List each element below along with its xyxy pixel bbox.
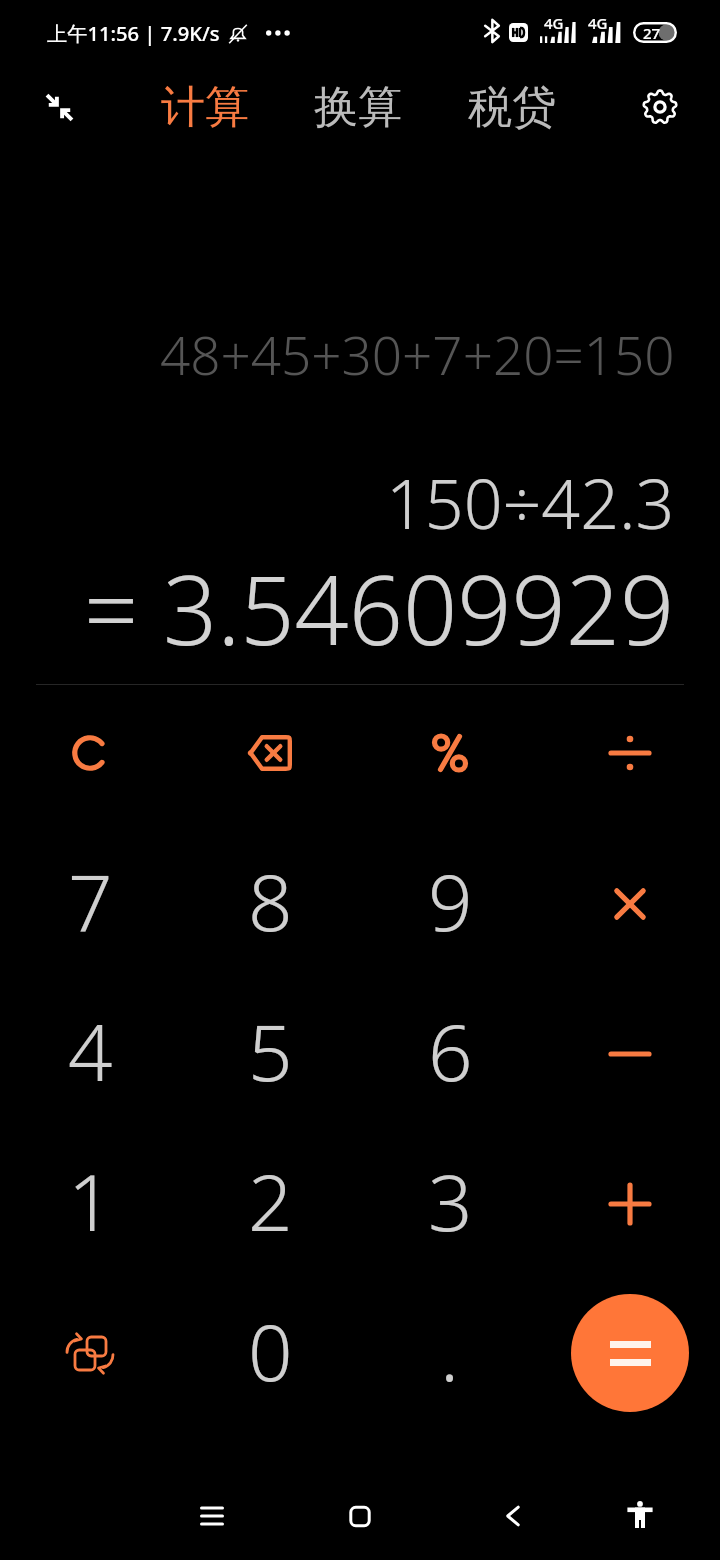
button[interactable]: 6 <box>360 979 540 1129</box>
staticText: 税贷 <box>468 80 556 135</box>
button[interactable]: 9 <box>360 829 540 979</box>
button[interactable]: Percent <box>360 678 540 828</box>
button[interactable]: Recent apps <box>152 1470 272 1560</box>
button[interactable]: 5 <box>180 979 360 1129</box>
staticText: 4 <box>68 998 113 1104</box>
staticText: 7 <box>68 848 113 954</box>
button[interactable]: Divide <box>540 678 720 828</box>
button[interactable]: 换算 <box>300 72 416 142</box>
staticText: 27 <box>643 23 661 43</box>
staticText: 5 <box>248 998 293 1104</box>
staticText: 换算 <box>314 80 402 135</box>
staticText: = 3.54609929 <box>84 543 675 672</box>
button[interactable]: 4 <box>0 979 180 1129</box>
staticText: 上午11:56 | 7.9K/s <box>47 19 220 47</box>
staticText: 9 <box>428 848 473 954</box>
button[interactable]: 税贷 <box>454 72 570 142</box>
button[interactable]: Multiply <box>540 829 720 979</box>
staticText: 1 <box>68 1148 113 1254</box>
button[interactable]: Plus <box>540 1129 720 1279</box>
staticText: 0 <box>248 1298 293 1404</box>
button[interactable]: Clear <box>0 678 180 828</box>
button[interactable]: Accessibility <box>580 1470 700 1560</box>
staticText: 6 <box>428 998 473 1104</box>
staticText: 4G <box>588 13 608 33</box>
button[interactable]: Minus <box>540 979 720 1129</box>
staticText: 计算 <box>161 80 249 135</box>
button[interactable]: Collapse <box>24 72 94 142</box>
button[interactable]: 7 <box>0 829 180 979</box>
button[interactable]: 3 <box>360 1129 540 1279</box>
button[interactable]: 2 <box>180 1129 360 1279</box>
button[interactable]: Back <box>453 1470 573 1560</box>
button[interactable]: 0 <box>180 1279 360 1429</box>
button[interactable]: Settings <box>625 72 695 142</box>
button[interactable]: Backspace <box>180 678 360 828</box>
button[interactable]: Home <box>300 1470 420 1560</box>
staticText: 150÷42.3 <box>386 456 675 549</box>
staticText: 2 <box>248 1148 293 1254</box>
staticText: . <box>440 1298 460 1404</box>
button[interactable]: 计算 <box>147 72 263 142</box>
button[interactable]: . <box>360 1279 540 1429</box>
button[interactable]: 8 <box>180 829 360 979</box>
staticText: 8 <box>248 848 293 954</box>
button[interactable]: Convert <box>0 1279 180 1429</box>
staticText: 4G <box>544 13 564 33</box>
staticText: 48+45+30+7+20=150 <box>160 318 675 390</box>
button[interactable]: Equals <box>571 1294 689 1412</box>
button[interactable]: 1 <box>0 1129 180 1279</box>
staticText: 3 <box>428 1148 473 1254</box>
